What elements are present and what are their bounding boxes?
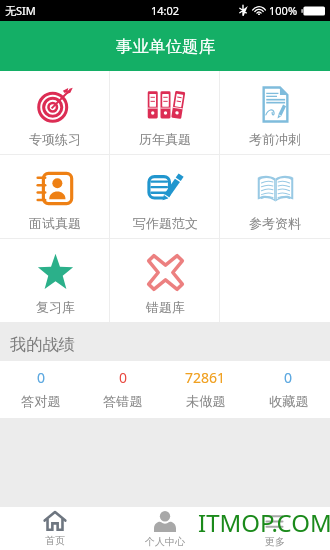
button[interactable]: 0: [247, 361, 330, 418]
staticText: 考前冲刺: [249, 131, 301, 147]
button[interactable]: 写作题范文: [110, 155, 220, 238]
staticText: 0: [37, 368, 46, 387]
staticText: 100%: [269, 3, 298, 18]
staticText: 我的战绩: [10, 334, 75, 354]
staticText: 错题库: [146, 299, 185, 315]
staticText: 更多: [265, 535, 285, 548]
button[interactable]: 复习库: [0, 239, 110, 322]
button[interactable]: 个人中心: [110, 507, 220, 550]
button[interactable]: 错题库: [110, 239, 220, 322]
staticText: 个人中心: [145, 535, 185, 548]
staticText: 参考资料: [249, 215, 301, 231]
staticText: 答错题: [103, 393, 143, 410]
button[interactable]: 首页: [0, 507, 110, 550]
button[interactable]: 72861: [164, 361, 247, 418]
staticText: 72861: [185, 368, 226, 387]
staticText: 复习库: [36, 299, 75, 315]
button[interactable]: 历年真题: [110, 71, 220, 154]
button[interactable]: 更多: [220, 507, 330, 550]
staticText: ITMOP.COM: [198, 506, 330, 539]
button[interactable]: 参考资料: [220, 155, 330, 238]
staticText: 历年真题: [139, 131, 191, 147]
staticText: 14:02: [151, 3, 180, 18]
staticText: 首页: [45, 534, 65, 547]
staticText: 无SIM: [5, 3, 36, 18]
button[interactable]: 专项练习: [0, 71, 110, 154]
staticText: 0: [284, 368, 293, 387]
staticText: 写作题范文: [133, 215, 198, 231]
staticText: 事业单位题库: [116, 36, 215, 57]
staticText: 专项练习: [29, 131, 81, 147]
button[interactable]: 0: [82, 361, 164, 418]
button[interactable]: 0: [0, 361, 82, 418]
button[interactable]: 考前冲刺: [220, 71, 330, 154]
staticText: 0: [119, 368, 128, 387]
staticText: 面试真题: [29, 215, 81, 231]
staticText: 未做题: [186, 393, 226, 410]
staticText: 答对题: [21, 393, 61, 410]
staticText: 收藏题: [269, 393, 309, 410]
button[interactable]: 面试真题: [0, 155, 110, 238]
